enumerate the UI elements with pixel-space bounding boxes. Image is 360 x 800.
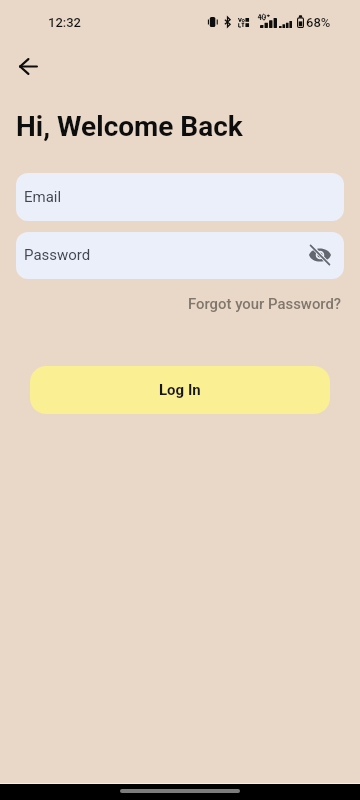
staticText: Forgot your Password? bbox=[188, 295, 342, 312]
staticText: 12:32 bbox=[48, 15, 81, 30]
button[interactable]: Show password bbox=[302, 237, 338, 273]
staticText: Password bbox=[24, 246, 91, 264]
staticText: Log In bbox=[159, 381, 201, 399]
staticText: 68% bbox=[306, 15, 331, 30]
button[interactable]: Forgot your Password? bbox=[180, 291, 350, 316]
button[interactable]: Log In bbox=[30, 366, 330, 414]
button[interactable]: Back bbox=[4, 42, 52, 90]
button[interactable]: Password bbox=[16, 232, 344, 279]
staticText: Email bbox=[24, 188, 62, 206]
staticText: Hi, Welcome Back bbox=[16, 110, 243, 143]
button[interactable]: Email bbox=[16, 173, 344, 221]
